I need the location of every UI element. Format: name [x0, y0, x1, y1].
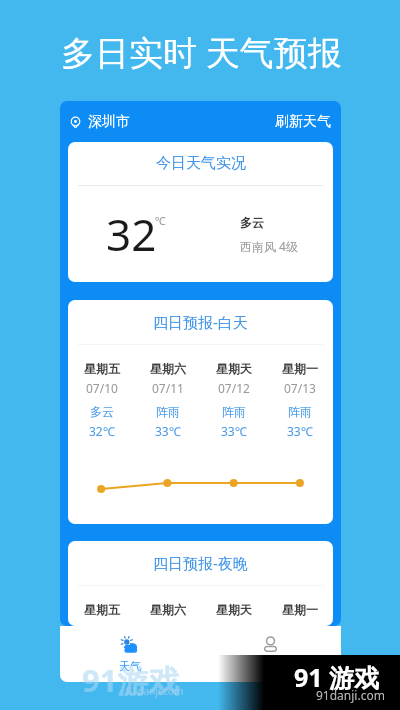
button[interactable]: 天气 [60, 626, 200, 682]
staticText: 星期五 [84, 361, 120, 376]
staticText: 07/13 [284, 380, 316, 396]
staticText: 星期天 [216, 361, 252, 376]
staticText: 天气 [119, 659, 141, 673]
staticText: 星期天 [216, 602, 252, 617]
button[interactable]: 刷新天气 [275, 113, 331, 131]
staticText: 今日天气实况 [156, 154, 246, 173]
staticText: 33℃ [155, 423, 181, 439]
staticText: 07/12 [218, 380, 250, 396]
staticText: 33℃ [287, 423, 313, 439]
staticText: 32 [106, 204, 157, 264]
staticText: 深圳市 [88, 113, 130, 131]
staticText: 33℃ [221, 423, 247, 439]
staticText: 91游戏 [82, 659, 180, 701]
staticText: 四日预报-白天 [153, 312, 248, 332]
staticText: 91danji.com [316, 687, 385, 703]
button[interactable]: 四日预报-夜晚 [68, 541, 333, 585]
staticText: 阵雨 [288, 404, 312, 419]
staticText: 阵雨 [222, 404, 246, 419]
staticText: 91 游戏 [294, 660, 380, 694]
staticText: 07/10 [86, 380, 118, 396]
staticText: 多云 [240, 215, 264, 230]
staticText: 四日预报-夜晚 [153, 553, 248, 573]
staticText: ℃ [155, 213, 166, 228]
button[interactable]: 深圳市 [69, 113, 130, 131]
staticText: 星期六 [150, 361, 186, 376]
staticText: 西南风 4级 [240, 238, 298, 254]
staticText: 多云 [90, 404, 114, 419]
button[interactable]: 今日天气实况 [68, 142, 333, 185]
staticText: 星期六 [150, 602, 186, 617]
staticText: 星期一 [282, 602, 318, 617]
staticText: 91danji.com [126, 684, 184, 698]
staticText: 星期五 [84, 602, 120, 617]
staticText: 32℃ [89, 423, 115, 439]
button[interactable]: 四日预报-白天 [68, 300, 333, 344]
staticText: 刷新天气 [275, 113, 331, 131]
staticText: 多日实时 天气预报 [61, 29, 342, 75]
button[interactable]: 我的 [200, 626, 341, 682]
staticText: 07/11 [152, 380, 184, 396]
staticText: 阵雨 [156, 404, 180, 419]
staticText: 星期一 [282, 361, 318, 376]
